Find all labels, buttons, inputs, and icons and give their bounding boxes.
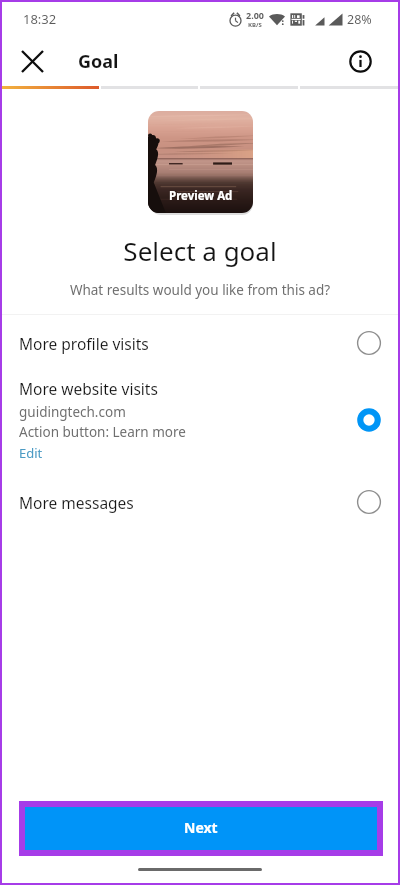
staticText: Preview Ad — [169, 188, 233, 204]
button[interactable]: Edit — [19, 444, 43, 462]
staticText: 18:32 — [23, 10, 57, 28]
staticText: Goal — [78, 49, 119, 74]
staticText: More website visits — [19, 378, 158, 399]
button[interactable]: Preview Ad — [148, 111, 253, 213]
staticText: 28% — [347, 11, 372, 28]
staticText: guidingtech.com — [19, 403, 126, 421]
button[interactable]: Close — [11, 40, 54, 83]
staticText: What results would you like from this ad… — [2, 281, 398, 299]
button[interactable]: Info — [343, 44, 377, 78]
button[interactable]: More messages — [2, 474, 398, 530]
button[interactable]: Next — [25, 807, 377, 850]
button[interactable]: More profile visits — [2, 315, 398, 371]
staticText: Select a goal — [2, 233, 398, 268]
staticText: KB/S — [248, 21, 262, 29]
staticText: More profile visits — [19, 333, 356, 354]
staticText: Action button: Learn more — [19, 423, 186, 441]
staticText: More messages — [19, 492, 356, 513]
staticText: 2.00 — [246, 9, 264, 21]
staticText: Next — [184, 818, 218, 837]
button[interactable]: More website visits — [2, 371, 398, 474]
